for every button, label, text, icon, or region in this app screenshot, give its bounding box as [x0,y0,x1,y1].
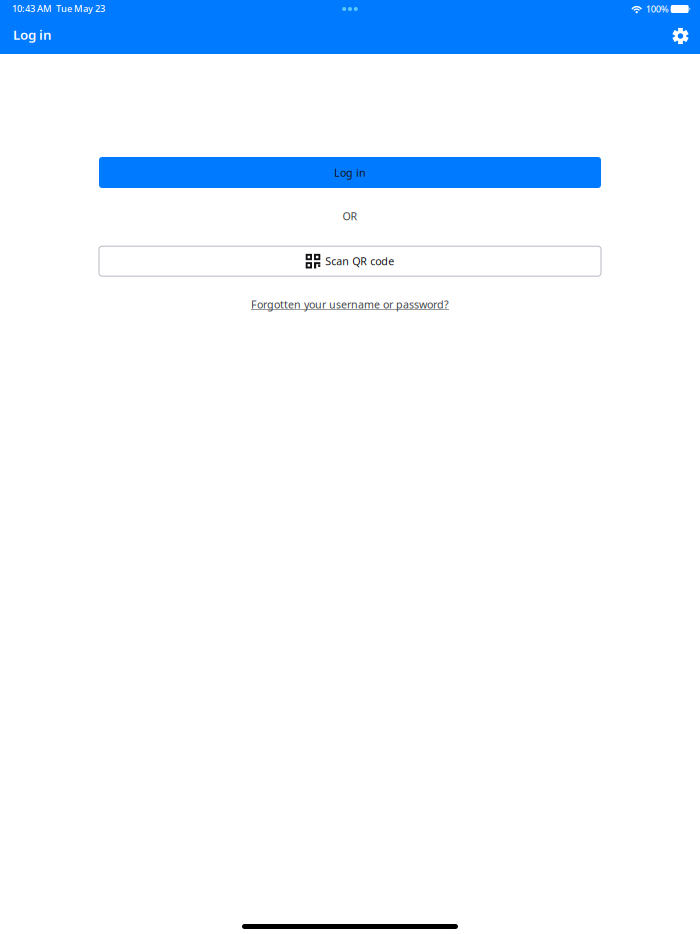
staticText: Scan QR code [325,254,394,268]
staticText: 100% [646,3,669,15]
staticText: Log in [13,26,52,43]
staticText: OR [342,209,357,223]
button[interactable]: Scan QR code [99,246,601,276]
button[interactable]: Settings [665,20,696,51]
button[interactable]: Log in [99,157,601,188]
staticText: Forgotten your username or password? [251,297,449,311]
staticText: 10:43 AM Tue May 23 [12,2,105,15]
button[interactable]: Forgotten your username or password? [251,297,449,311]
staticText: Log in [334,165,366,180]
